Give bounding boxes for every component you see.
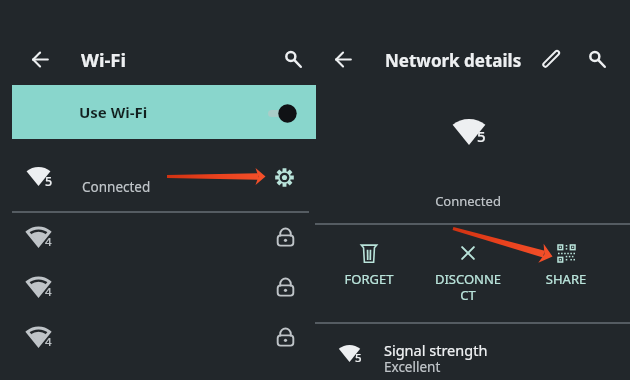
button[interactable]: Search <box>275 43 308 76</box>
staticText: 5 <box>477 126 486 146</box>
staticText: 5 <box>45 173 53 190</box>
staticText: Excellent <box>384 358 441 376</box>
staticText: 4 <box>45 284 52 300</box>
staticText: 4 <box>45 234 52 250</box>
button[interactable]: SHARE <box>532 243 600 288</box>
button[interactable]: FORGET <box>335 243 403 288</box>
staticText: DISCONNECT <box>434 270 502 304</box>
staticText: Connected <box>435 192 501 210</box>
button[interactable]: Use Wi-Fi <box>12 85 316 139</box>
button[interactable]: Secured network <box>277 327 294 346</box>
button[interactable]: Secured network <box>277 227 294 246</box>
staticText: Wi-Fi <box>81 47 127 72</box>
staticText: Network details <box>385 49 522 72</box>
button[interactable]: Search <box>579 43 612 76</box>
staticText: Connected <box>82 178 151 196</box>
button[interactable]: Back <box>23 44 56 76</box>
button[interactable]: Settings <box>275 168 294 187</box>
staticText: Signal strength <box>384 340 488 360</box>
staticText: SHARE <box>532 270 600 288</box>
button[interactable]: Secured network <box>277 277 294 296</box>
staticText: 5 <box>355 350 362 366</box>
staticText: Use Wi-Fi <box>79 102 148 122</box>
staticText: FORGET <box>335 270 403 288</box>
staticText: 4 <box>45 334 52 350</box>
button[interactable]: Back <box>326 44 359 76</box>
button[interactable]: Edit <box>541 49 561 69</box>
button[interactable]: DISCONNECT <box>434 243 502 304</box>
